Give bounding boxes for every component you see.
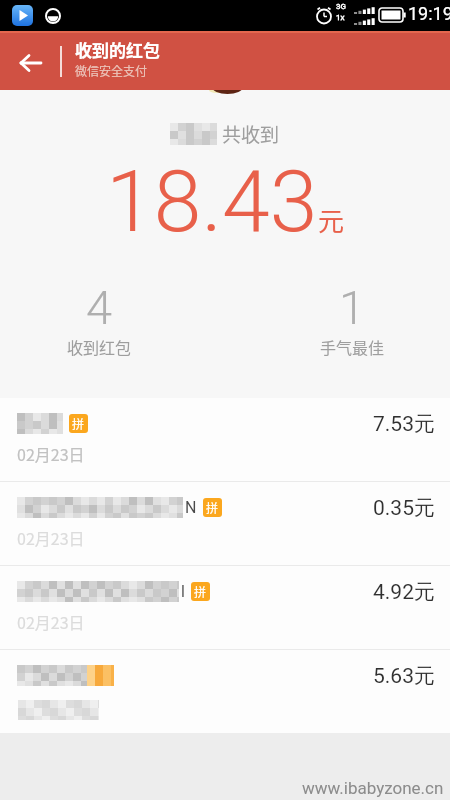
- staticText: 1x: [336, 13, 345, 22]
- staticText: 共收到: [222, 120, 280, 148]
- staticText: N: [185, 498, 197, 517]
- button[interactable]: l: [0, 566, 450, 649]
- staticText: 拼: [206, 499, 219, 516]
- staticText: 拼: [194, 583, 207, 600]
- staticText: l: [181, 582, 185, 601]
- staticText: 02月23日: [17, 610, 85, 633]
- button[interactable]: 拼: [0, 398, 450, 481]
- staticText: 5.63元: [373, 663, 435, 689]
- staticText: 7.53元: [373, 411, 435, 437]
- staticText: 收到红包: [67, 335, 132, 358]
- staticText: 微信安全支付: [75, 62, 148, 79]
- staticText: 18.43: [106, 151, 318, 252]
- staticText: 4: [86, 280, 113, 335]
- staticText: 02月23日: [17, 526, 85, 549]
- staticText: 02月23日: [17, 442, 85, 465]
- staticText: 4.92元: [373, 579, 435, 605]
- staticText: 元: [318, 201, 345, 239]
- staticText: www.ibabyzone.cn: [302, 778, 444, 798]
- staticText: 3G: [336, 2, 346, 11]
- staticText: 收到的红包: [75, 37, 160, 62]
- button[interactable]: N: [0, 482, 450, 565]
- button[interactable]: 5.63元: [0, 650, 450, 733]
- staticText: 手气最佳: [320, 335, 385, 358]
- staticText: 19:19: [408, 3, 450, 24]
- staticText: 0.35元: [373, 495, 435, 521]
- button[interactable]: [10, 43, 52, 83]
- staticText: 拼: [72, 415, 85, 432]
- staticText: 1: [339, 280, 366, 335]
